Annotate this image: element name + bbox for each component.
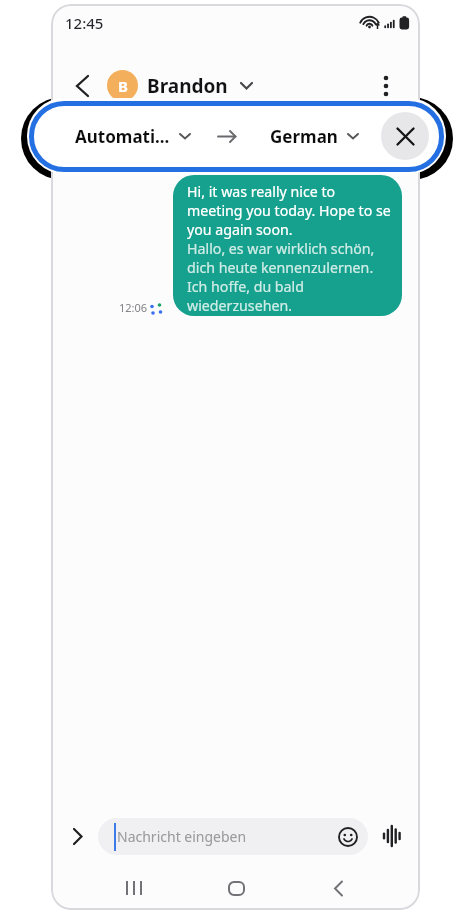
button[interactable] [59, 817, 95, 855]
staticText: 12:06 [119, 300, 148, 315]
button[interactable]: Nachricht eingeben [98, 818, 368, 855]
staticText: Hallo, es war wirklich schön, dich heute… [187, 239, 375, 315]
button[interactable]: Automati... [75, 119, 191, 153]
button[interactable] [369, 68, 403, 104]
staticText: Nachricht eingeben [117, 827, 247, 846]
staticText: 12:45 [65, 13, 104, 33]
staticText: B [118, 76, 128, 96]
staticText: Automati... [75, 125, 170, 148]
staticText: Brandon [147, 73, 228, 99]
button[interactable]: B [107, 70, 138, 101]
button[interactable] [381, 112, 429, 160]
button[interactable] [206, 868, 266, 908]
staticText: Hi, it was really nice to meeting you to… [187, 182, 391, 239]
staticText: German [270, 125, 338, 148]
button[interactable] [377, 821, 407, 851]
button[interactable]: Brandon [147, 68, 253, 104]
button[interactable] [104, 868, 164, 908]
button[interactable]: Hi, it was really nice to meeting you to… [173, 175, 402, 316]
button[interactable]: German [270, 119, 359, 153]
button[interactable] [65, 68, 101, 104]
button[interactable] [308, 868, 368, 908]
